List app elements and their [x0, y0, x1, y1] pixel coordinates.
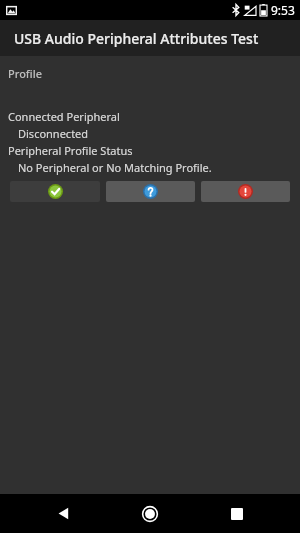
- staticText: Disconnected: [18, 126, 89, 141]
- staticText: USB Audio Peripheral Attributes Test: [14, 29, 259, 48]
- button[interactable]: Recent apps: [213, 494, 261, 533]
- button[interactable]: Fail: [201, 181, 290, 202]
- staticText: Profile: [8, 66, 43, 81]
- button[interactable]: Pass: [10, 181, 100, 202]
- button[interactable]: Info: [106, 181, 195, 202]
- button[interactable]: Back: [39, 494, 87, 533]
- button[interactable]: Home: [126, 494, 174, 533]
- staticText: No Peripheral or No Matching Profile.: [18, 160, 212, 175]
- staticText: 9:53: [271, 2, 295, 18]
- staticText: Peripheral Profile Status: [8, 143, 133, 158]
- staticText: Connected Peripheral: [8, 109, 120, 124]
